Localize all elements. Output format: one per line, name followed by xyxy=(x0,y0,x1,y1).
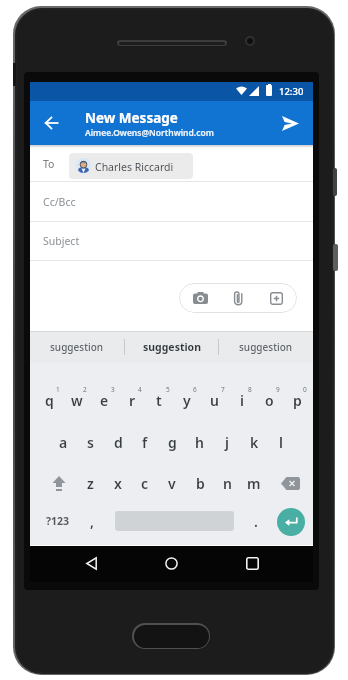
button[interactable]: n xyxy=(214,472,240,494)
staticText: suggestion xyxy=(50,340,104,354)
staticText: 0 xyxy=(303,385,307,394)
staticText: Charles Riccardi xyxy=(95,160,174,174)
button[interactable]: h xyxy=(186,431,212,453)
button[interactable]: b xyxy=(187,472,213,494)
staticText: suggestion xyxy=(143,340,201,354)
staticText: f xyxy=(142,433,148,452)
staticText: m xyxy=(247,474,261,493)
button[interactable] xyxy=(186,284,214,312)
button[interactable]: r xyxy=(119,389,145,411)
staticText: j xyxy=(225,433,229,452)
button[interactable]: f xyxy=(132,431,158,453)
button[interactable]: p xyxy=(284,389,310,411)
button[interactable]: z xyxy=(77,472,103,494)
staticText: ?123 xyxy=(46,514,70,528)
button[interactable]: j xyxy=(214,431,240,453)
staticText: x xyxy=(114,474,122,493)
button[interactable] xyxy=(157,549,185,577)
button[interactable]: o xyxy=(256,389,282,411)
staticText: . xyxy=(254,512,258,531)
staticText: Aimee.Owens@Northwind.com xyxy=(85,127,214,139)
button[interactable] xyxy=(45,469,73,497)
staticText: Subject xyxy=(43,234,80,248)
staticText: , xyxy=(90,512,94,531)
staticText: 3 xyxy=(111,385,115,394)
staticText: u xyxy=(210,391,219,410)
button[interactable]: d xyxy=(105,431,131,453)
staticText: New Message xyxy=(85,109,178,127)
button[interactable]: q xyxy=(36,389,62,411)
button[interactable] xyxy=(132,623,210,649)
button[interactable]: m xyxy=(241,472,267,494)
button[interactable]: i xyxy=(229,389,255,411)
button[interactable]: ?123 xyxy=(38,508,78,534)
button[interactable]: s xyxy=(77,431,103,453)
staticText: z xyxy=(87,474,94,493)
staticText: c xyxy=(141,474,149,493)
staticText: Cc/Bcc xyxy=(43,195,76,209)
staticText: v xyxy=(168,474,176,493)
staticText: 4 xyxy=(138,385,142,394)
button[interactable] xyxy=(38,110,64,136)
staticText: 5 xyxy=(166,385,170,394)
staticText: h xyxy=(195,433,204,452)
staticText: g xyxy=(168,433,177,452)
button[interactable]: a xyxy=(50,431,76,453)
button[interactable]: t xyxy=(146,389,172,411)
button[interactable] xyxy=(276,469,304,497)
staticText: To xyxy=(43,157,55,171)
staticText: d xyxy=(114,433,123,452)
staticText: e xyxy=(100,391,109,410)
button[interactable]: Cc/Bcc xyxy=(30,182,313,222)
button[interactable] xyxy=(238,549,266,577)
button[interactable]: u xyxy=(201,389,227,411)
staticText: 12:30 xyxy=(279,85,304,98)
button[interactable]: y xyxy=(174,389,200,411)
button[interactable] xyxy=(277,508,305,536)
button[interactable] xyxy=(262,284,290,312)
button[interactable]: , xyxy=(82,509,102,533)
button[interactable]: g xyxy=(159,431,185,453)
staticText: 8 xyxy=(248,385,252,394)
staticText: w xyxy=(71,391,83,410)
staticText: s xyxy=(87,433,94,452)
button[interactable] xyxy=(276,110,304,136)
staticText: k xyxy=(250,433,259,452)
button[interactable]: suggestion xyxy=(219,331,313,363)
staticText: q xyxy=(45,391,54,410)
staticText: y xyxy=(183,391,191,410)
staticText: r xyxy=(129,391,136,410)
staticText: suggestion xyxy=(239,340,293,354)
staticText: l xyxy=(279,433,283,452)
staticText: p xyxy=(293,391,302,410)
button[interactable]: Charles Riccardi xyxy=(69,153,193,179)
button[interactable]: suggestion xyxy=(125,331,219,363)
button[interactable] xyxy=(224,284,252,312)
staticText: t xyxy=(156,391,162,410)
button[interactable]: . xyxy=(246,509,266,533)
staticText: n xyxy=(223,474,232,493)
button[interactable]: x xyxy=(105,472,131,494)
button[interactable]: Subject xyxy=(30,222,313,261)
button[interactable]: To xyxy=(30,145,313,182)
button[interactable]: e xyxy=(91,389,117,411)
staticText: b xyxy=(196,474,205,493)
button[interactable]: w xyxy=(64,389,90,411)
staticText: 2 xyxy=(83,385,87,394)
staticText: 7 xyxy=(221,385,225,394)
staticText: 9 xyxy=(276,385,280,394)
button[interactable] xyxy=(77,549,105,577)
button[interactable]: k xyxy=(241,431,267,453)
staticText: i xyxy=(240,391,244,410)
staticText: o xyxy=(265,391,274,410)
button[interactable]: c xyxy=(132,472,158,494)
button[interactable]: l xyxy=(268,431,294,453)
staticText: a xyxy=(59,433,68,452)
button[interactable]: v xyxy=(159,472,185,494)
staticText: 6 xyxy=(193,385,197,394)
staticText: 1 xyxy=(56,385,60,394)
button[interactable]: suggestion xyxy=(30,331,124,363)
